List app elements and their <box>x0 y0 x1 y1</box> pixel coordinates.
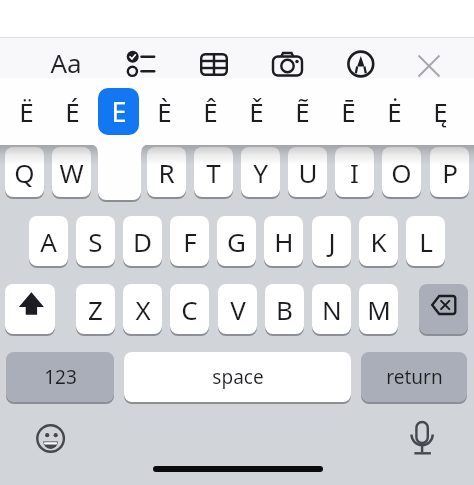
staticText: return <box>386 364 443 390</box>
button[interactable]: L <box>406 216 445 266</box>
button[interactable]: Aa <box>46 44 86 80</box>
staticText: Y <box>253 155 268 190</box>
staticText: G <box>227 224 246 259</box>
staticText: D <box>133 224 152 259</box>
button[interactable]: Ê <box>190 85 230 137</box>
button[interactable] <box>200 53 228 76</box>
staticText: W <box>59 155 84 190</box>
button[interactable] <box>271 50 304 77</box>
staticText: C <box>181 292 198 327</box>
button[interactable]: E <box>98 88 139 135</box>
button[interactable]: V <box>218 284 257 334</box>
button[interactable]: H <box>264 216 303 266</box>
staticText: É <box>65 94 80 129</box>
staticText: L <box>419 224 433 259</box>
button[interactable]: I <box>335 147 374 197</box>
button[interactable]: Y <box>241 147 280 197</box>
staticText: Ë <box>19 94 34 129</box>
button[interactable]: return <box>361 352 467 402</box>
button[interactable]: Ē <box>328 85 368 137</box>
staticText: M <box>367 292 391 327</box>
staticText: Ē <box>341 94 356 129</box>
button[interactable]: U <box>288 147 327 197</box>
staticText: I <box>350 155 359 190</box>
staticText: A <box>40 224 57 259</box>
staticText: H <box>274 224 294 259</box>
staticText: 123 <box>44 364 77 390</box>
staticText: F <box>183 224 197 259</box>
staticText: V <box>230 292 246 327</box>
button[interactable]: Ë <box>6 85 46 137</box>
button[interactable]: Ě <box>236 85 276 137</box>
button[interactable]: D <box>123 216 162 266</box>
staticText: X <box>135 292 151 327</box>
button[interactable]: K <box>359 216 398 266</box>
staticText: Z <box>88 292 103 327</box>
staticText: T <box>206 155 221 190</box>
button[interactable]: B <box>265 284 304 334</box>
button[interactable] <box>124 46 158 80</box>
staticText: Ě <box>249 94 264 129</box>
button[interactable]: S <box>76 216 115 266</box>
button[interactable]: P <box>430 147 469 197</box>
button[interactable]: Ę <box>420 85 460 137</box>
button[interactable]: 123 <box>6 352 114 402</box>
staticText: S <box>88 224 103 259</box>
staticText: Aa <box>50 45 82 80</box>
staticText: N <box>322 292 342 327</box>
staticText: E <box>111 93 127 130</box>
button[interactable]: È <box>144 85 184 137</box>
staticText: J <box>328 224 336 259</box>
staticText: space <box>212 364 264 390</box>
button[interactable] <box>347 50 375 78</box>
staticText: Ê <box>203 94 218 129</box>
button[interactable]: W <box>52 147 91 197</box>
button[interactable]: O <box>382 147 421 197</box>
button[interactable]: Q <box>5 147 44 197</box>
staticText: Q <box>14 155 35 190</box>
button[interactable] <box>419 284 468 334</box>
button[interactable]: A <box>29 216 68 266</box>
staticText: Ę <box>433 94 448 129</box>
button[interactable]: N <box>312 284 351 334</box>
staticText: U <box>298 155 318 190</box>
staticText: R <box>158 155 175 190</box>
staticText: O <box>391 155 412 190</box>
button[interactable] <box>5 284 55 334</box>
button[interactable]: R <box>147 147 186 197</box>
button[interactable]: Ė <box>374 85 414 137</box>
button[interactable] <box>36 424 66 454</box>
staticText: È <box>157 94 172 129</box>
button[interactable]: space <box>124 352 351 402</box>
button[interactable]: G <box>217 216 256 266</box>
button[interactable]: J <box>312 216 351 266</box>
button[interactable]: Ẽ <box>282 85 322 137</box>
staticText: B <box>276 292 293 327</box>
button[interactable]: M <box>359 284 398 334</box>
button[interactable]: C <box>170 284 209 334</box>
button[interactable] <box>417 54 441 78</box>
button[interactable]: T <box>194 147 233 197</box>
staticText: Ė <box>387 94 402 129</box>
staticText: P <box>442 155 458 190</box>
button[interactable]: Z <box>76 284 115 334</box>
staticText: Ẽ <box>295 94 310 129</box>
staticText: K <box>370 224 387 259</box>
button[interactable] <box>408 418 438 458</box>
button[interactable]: X <box>123 284 162 334</box>
button[interactable]: F <box>170 216 209 266</box>
button[interactable]: É <box>52 85 92 137</box>
